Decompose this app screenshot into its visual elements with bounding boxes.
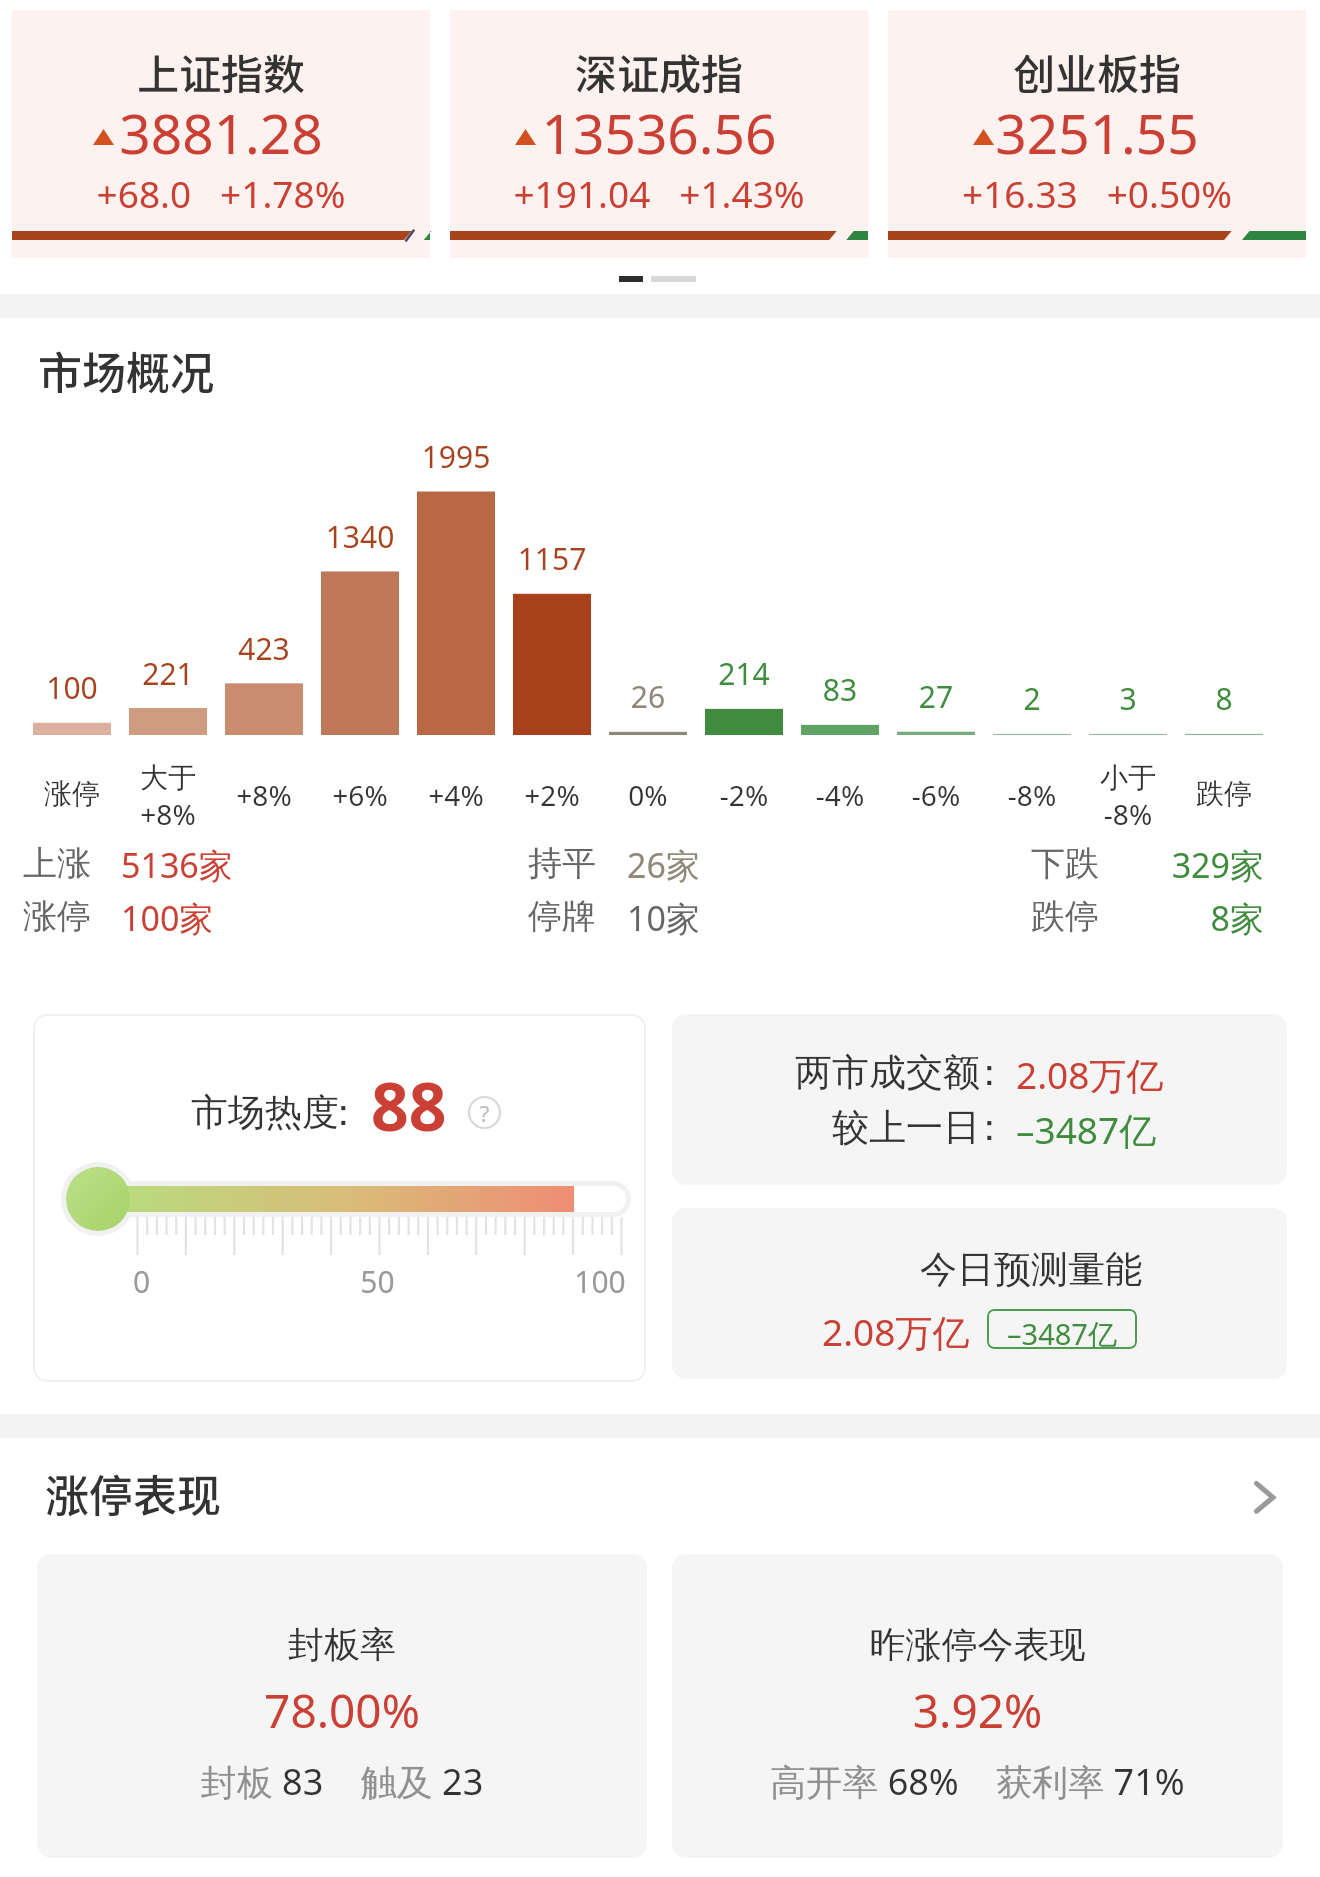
staticText: 跌停 (1168, 776, 1280, 811)
staticText: 跌停 (1031, 895, 1151, 938)
staticText: 8家 (1063, 895, 1264, 941)
staticText: 26 (592, 676, 704, 717)
staticText: ： (971, 1104, 1031, 1151)
staticText: 大于 +8% (112, 760, 224, 833)
staticText: +2% (496, 776, 608, 814)
staticText: 3.92% (672, 1679, 1283, 1742)
staticText: -2% (688, 776, 800, 814)
staticText: 市场热度 (191, 1089, 471, 1136)
staticText: 涨停表现 (45, 1461, 445, 1525)
button[interactable] (33, 1014, 646, 1382)
staticText: 2.08万亿 (1016, 1049, 1276, 1100)
staticText: 3251.55 (888, 95, 1306, 170)
staticText: +8% (208, 776, 320, 814)
button[interactable] (672, 1208, 1287, 1379)
staticText: 3881.28 (12, 95, 430, 170)
staticText: +16.33 +0.50% (888, 168, 1306, 218)
staticText: 329家 (1063, 842, 1264, 888)
staticText: –3487亿 (987, 1314, 1137, 1349)
staticText: ： (971, 1049, 1031, 1096)
staticText: 78.00% (37, 1679, 647, 1742)
staticText: 221 (112, 653, 224, 694)
staticText: 83 (784, 669, 896, 710)
staticText: -6% (880, 776, 992, 814)
staticText: 今日预测量能 (672, 1246, 1142, 1293)
staticText: 较上一日 (700, 1104, 980, 1151)
staticText: 创业板指 (888, 41, 1306, 102)
staticText: 昨涨停今表现 (672, 1622, 1283, 1667)
staticText: 100 (550, 1261, 650, 1302)
staticText: 2 (976, 678, 1088, 719)
staticText: 上涨 (23, 842, 143, 885)
staticText: 27 (880, 676, 992, 717)
staticText: 深证成指 (450, 41, 868, 102)
staticText: +191.04 +1.43% (450, 168, 868, 218)
staticText: 26家 (627, 842, 827, 888)
staticText: -8% (976, 776, 1088, 814)
staticText: 1995 (400, 436, 512, 477)
staticText: 10家 (627, 895, 827, 941)
staticText: +6% (304, 776, 416, 814)
staticText: 50 (344, 1261, 411, 1302)
staticText: 下跌 (1031, 842, 1151, 885)
staticText: 涨停 (16, 776, 128, 811)
staticText: 5136家 (121, 842, 321, 888)
button[interactable] (672, 1554, 1283, 1858)
staticText: 1340 (304, 516, 416, 557)
staticText: –3487亿 (1016, 1104, 1276, 1155)
staticText: 1157 (496, 538, 608, 579)
staticText: 100家 (121, 895, 321, 941)
staticText: 3 (1072, 678, 1184, 719)
staticText: 0% (592, 776, 704, 814)
staticText: 214 (688, 653, 800, 694)
staticText: 封板 83 触及 23 (37, 1757, 647, 1806)
button[interactable] (37, 1554, 647, 1858)
staticText: +68.0 +1.78% (12, 168, 430, 218)
staticText: 高开率 68% 获利率 71% (672, 1757, 1283, 1806)
staticText: 2.08万亿 (822, 1306, 1022, 1357)
staticText: ? (468, 1098, 501, 1128)
staticText: 8 (1168, 678, 1280, 719)
button[interactable]: 查看涨停表现详情 (1234, 1475, 1290, 1519)
staticText: 两市成交额 (700, 1049, 980, 1096)
staticText: 小于 -8% (1072, 760, 1184, 833)
staticText: 423 (208, 628, 320, 669)
staticText: 0 (126, 1261, 157, 1302)
staticText: ： (1068, 1246, 1128, 1293)
staticText: +4% (400, 776, 512, 814)
button[interactable] (672, 1014, 1287, 1185)
staticText: 涨停 (23, 895, 143, 938)
staticText: ： (325, 1089, 385, 1136)
staticText: 13536.56 (450, 95, 868, 170)
button[interactable]: 深证成指 (450, 10, 868, 258)
staticText: 停牌 (528, 895, 648, 938)
staticText: 封板率 (37, 1622, 647, 1667)
staticText: 88 (371, 1060, 471, 1150)
staticText: 上证指数 (12, 41, 430, 102)
staticText: -4% (784, 776, 896, 814)
staticText: 100 (16, 667, 128, 708)
staticText: 持平 (528, 842, 648, 885)
staticText: 市场概况 (38, 338, 438, 402)
button[interactable]: 上证指数 (12, 10, 430, 258)
button[interactable]: 创业板指 (888, 10, 1306, 258)
